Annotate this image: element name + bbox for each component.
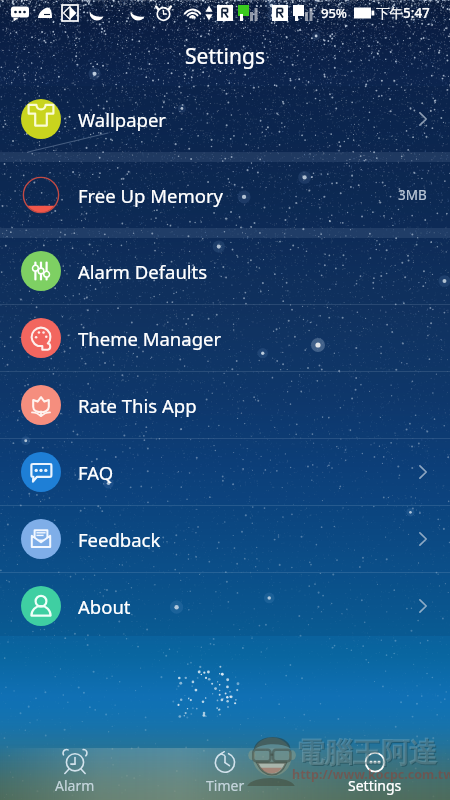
button[interactable]: Alarm Defaults <box>0 238 450 304</box>
staticText: Free Up Memory <box>78 183 224 208</box>
staticText: 電腦王阿達 <box>297 736 438 771</box>
button[interactable]: Feedback <box>0 506 450 572</box>
staticText: Alarm <box>55 776 95 795</box>
button[interactable]: FAQ <box>0 439 450 505</box>
staticText: FAQ <box>78 460 114 485</box>
staticText: 下午5:47 <box>376 4 430 22</box>
button[interactable]: Wallpaper <box>0 86 450 152</box>
staticText: Rate This App <box>78 393 197 418</box>
button[interactable]: Free Up Memory <box>0 162 450 228</box>
staticText: Alarm Defaults <box>78 259 208 284</box>
button[interactable]: Rate This App <box>0 372 450 438</box>
staticText: 3MB <box>398 186 427 204</box>
staticText: Feedback <box>78 527 161 552</box>
staticText: 電腦王阿達 <box>296 735 437 770</box>
staticText: http://www.kocpc.com.tw <box>292 766 450 783</box>
staticText: Settings <box>185 42 265 71</box>
staticText: 95% <box>321 4 347 22</box>
staticText: Settings <box>348 776 402 795</box>
button[interactable]: Settings <box>300 738 450 800</box>
button[interactable]: Timer <box>150 738 300 800</box>
staticText: Timer <box>206 776 245 795</box>
button[interactable]: About <box>0 573 450 639</box>
button[interactable]: Theme Manager <box>0 305 450 371</box>
staticText: About <box>78 594 131 619</box>
staticText: Theme Manager <box>78 326 222 351</box>
staticText: Wallpaper <box>78 107 166 132</box>
button[interactable]: Alarm <box>0 738 150 800</box>
